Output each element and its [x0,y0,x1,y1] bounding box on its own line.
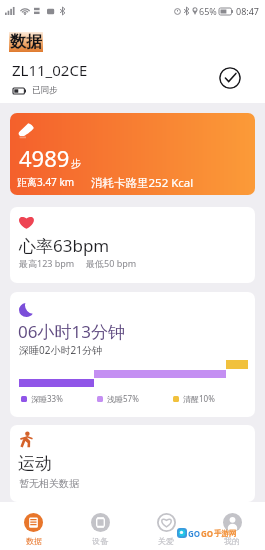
staticText: 消耗卡路里252 Kcal [91,175,194,191]
staticText: 我的 [224,536,240,546]
staticText: 06小时13分钟 [18,320,125,343]
staticText: 设备 [92,536,108,546]
staticText: 步 [71,157,81,170]
staticText: GO [201,528,214,538]
staticText: 深睡33% [31,393,63,404]
staticText: 浅睡57% [107,393,139,404]
staticText: 4989 [19,143,70,173]
staticText: 数据 [10,32,42,52]
staticText: 08:47 [236,5,260,17]
button[interactable]: 设备 [67,502,133,550]
button[interactable]: 06小时13分钟 [10,292,255,417]
staticText: ZL11_02CE [12,60,88,80]
staticText: 数据 [26,536,42,546]
staticText: 最高123 bpm [19,257,75,269]
staticText: 暂无相关数据 [19,477,79,490]
button[interactable]: 关爱 [133,502,199,550]
button[interactable]: Synced [219,67,241,89]
button[interactable]: 4989 [10,113,255,195]
button[interactable]: 运动 [10,425,255,502]
staticText: GO [188,528,201,538]
staticText: 深睡02小时21分钟 [19,343,102,357]
staticText: 65% [199,5,217,17]
button[interactable]: 数据 [0,502,67,550]
staticText: 清醒10% [183,393,215,404]
staticText: 已同步 [32,85,58,96]
staticText: 运动 [18,453,52,474]
staticText: 心率63bpm [19,234,110,257]
staticText: 关爱 [158,536,174,546]
button[interactable]: 我的 [199,502,265,550]
button[interactable]: 心率63bpm [10,207,255,283]
staticText: 手游网 [214,529,237,538]
staticText: 距离3.47 km [17,175,75,189]
staticText: 最低50 bpm [86,257,137,269]
